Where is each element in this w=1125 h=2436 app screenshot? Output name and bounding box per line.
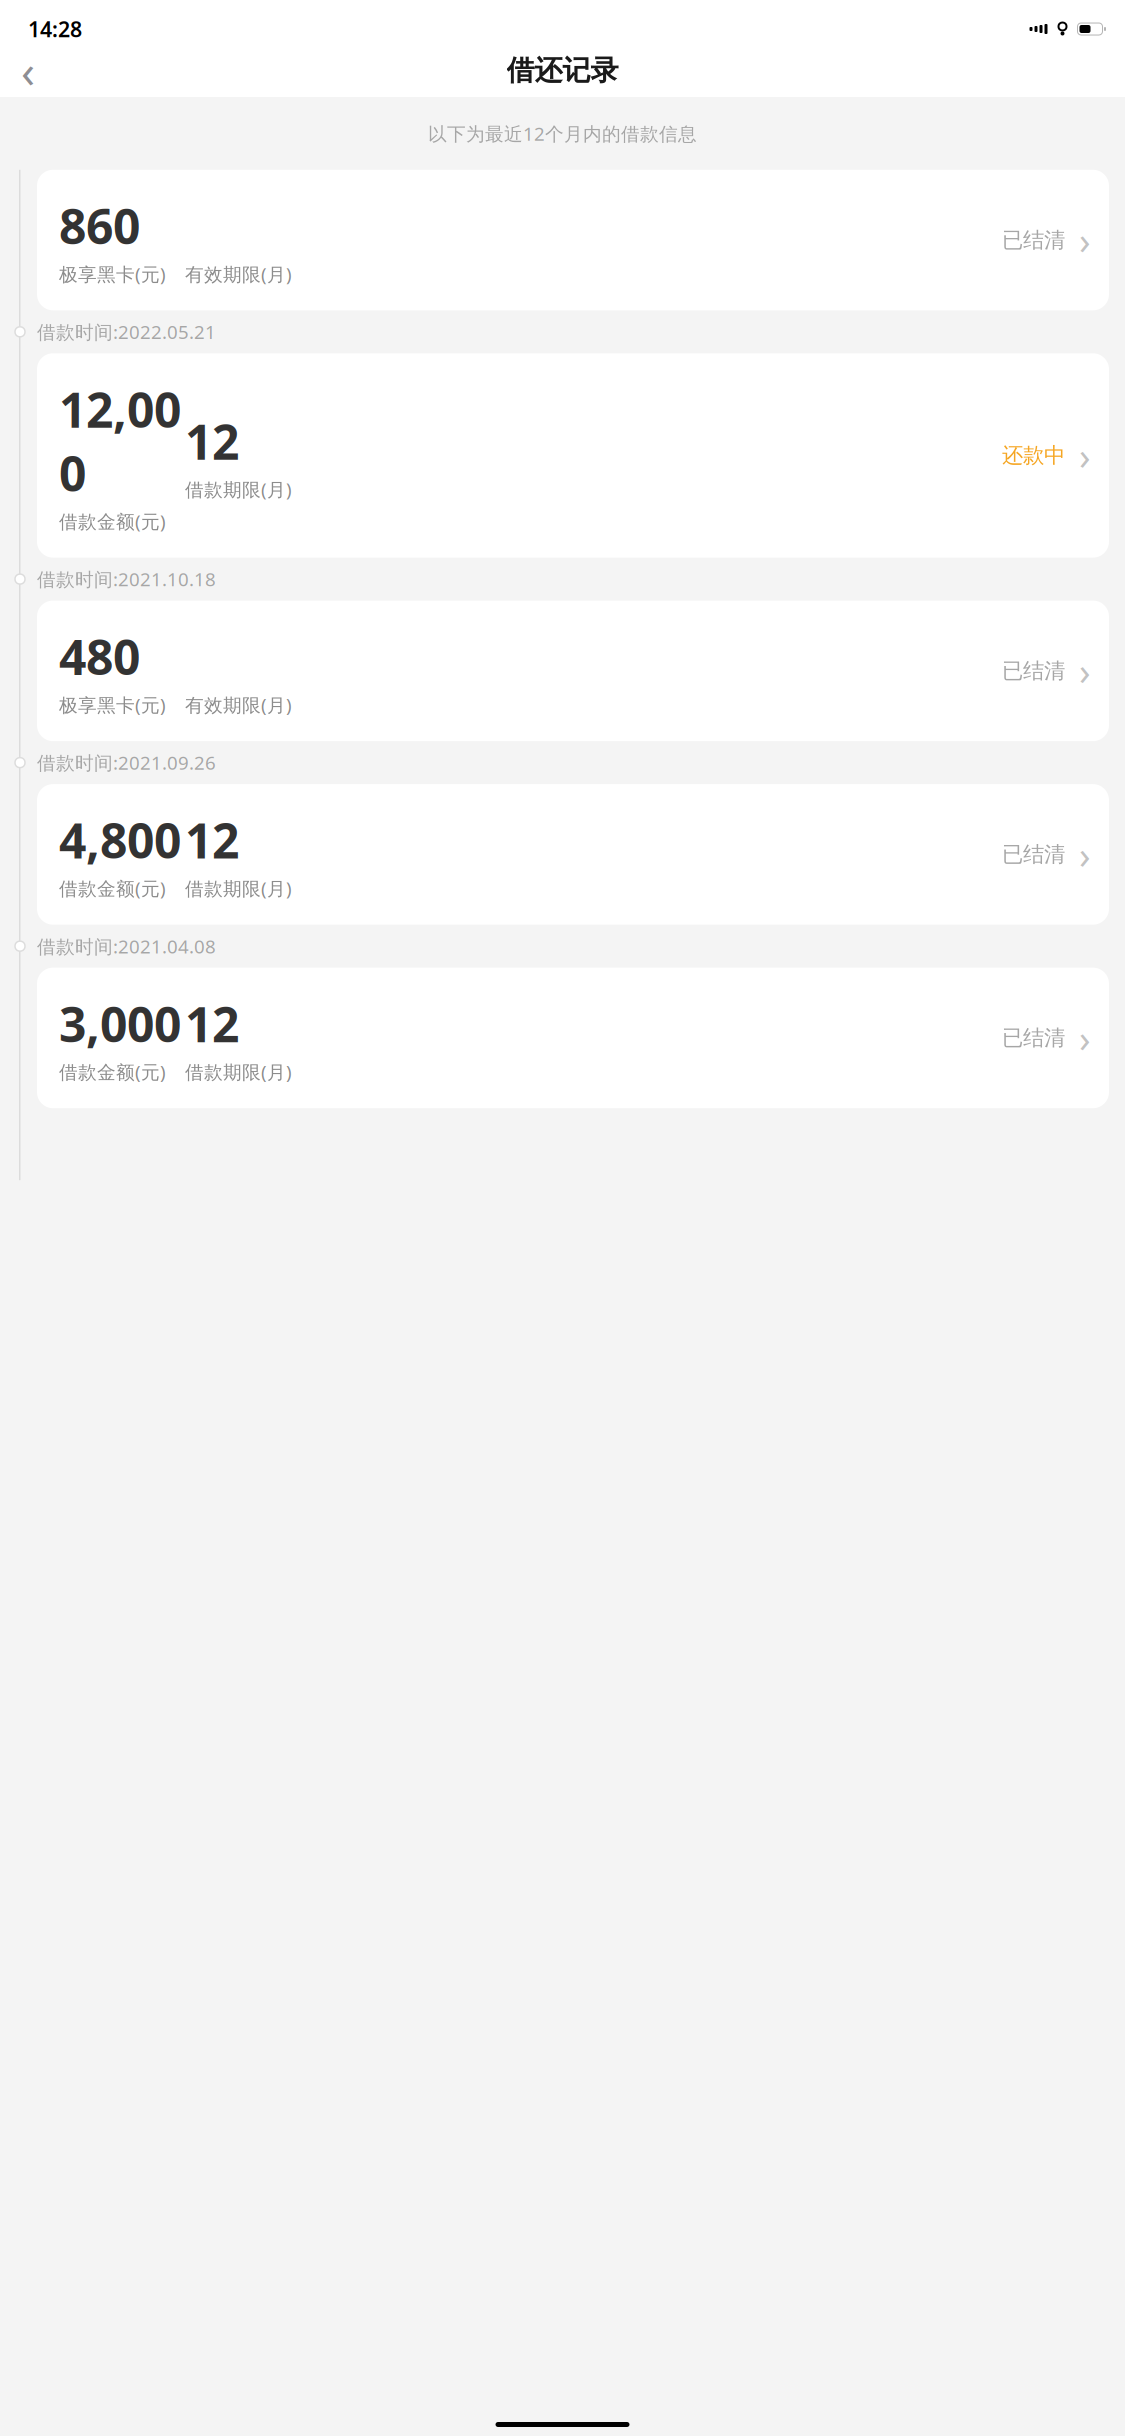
staticText: 极享黑卡(元) bbox=[59, 261, 166, 286]
staticText: 860 bbox=[59, 194, 140, 257]
staticText: 已结清 bbox=[1002, 227, 1065, 253]
button[interactable]: 12,000 bbox=[37, 353, 1109, 558]
staticText: 12 bbox=[185, 808, 239, 872]
staticText: 已结清 bbox=[1002, 841, 1065, 867]
staticText: 以下为最近12个月内的借款信息 bbox=[428, 121, 697, 146]
staticText: 借款时间:2022.05.21 bbox=[37, 319, 216, 344]
staticText: 借还记录 bbox=[506, 53, 618, 88]
staticText: 还款中 bbox=[1002, 442, 1065, 469]
button[interactable]: 返回 bbox=[5, 47, 51, 93]
staticText: 极享黑卡(元) bbox=[59, 692, 166, 717]
staticText: ‹ bbox=[21, 40, 35, 101]
staticText: 借款期限(月) bbox=[185, 1059, 292, 1084]
button[interactable]: 860 bbox=[37, 170, 1109, 310]
staticText: 12 bbox=[185, 409, 239, 473]
staticText: 借款金额(元) bbox=[59, 876, 166, 901]
staticText: 借款时间:2021.10.18 bbox=[37, 567, 216, 591]
staticText: 借款金额(元) bbox=[59, 509, 166, 534]
staticText: 已结清 bbox=[1002, 1025, 1065, 1051]
button[interactable]: 4,800 bbox=[37, 784, 1109, 925]
staticText: 3,000 bbox=[59, 992, 181, 1055]
staticText: › bbox=[1079, 215, 1091, 265]
button[interactable]: 3,000 bbox=[37, 968, 1109, 1108]
button[interactable]: 480 bbox=[37, 601, 1109, 741]
staticText: 14:28 bbox=[28, 15, 82, 43]
staticText: › bbox=[1079, 646, 1091, 696]
staticText: 借款时间:2021.09.26 bbox=[37, 750, 216, 775]
staticText: 借款时间:2021.04.08 bbox=[37, 934, 216, 959]
staticText: › bbox=[1079, 830, 1091, 879]
staticText: › bbox=[1079, 431, 1091, 480]
staticText: 12 bbox=[185, 992, 239, 1055]
staticText: 4,800 bbox=[59, 808, 181, 872]
staticText: 借款金额(元) bbox=[59, 1059, 166, 1084]
staticText: 12,000 bbox=[59, 377, 181, 505]
staticText: 有效期限(月) bbox=[185, 692, 292, 717]
staticText: 已结清 bbox=[1002, 658, 1065, 684]
staticText: 借款期限(月) bbox=[185, 477, 292, 502]
staticText: 有效期限(月) bbox=[185, 261, 292, 286]
staticText: 480 bbox=[59, 625, 140, 688]
staticText: 借款期限(月) bbox=[185, 876, 292, 901]
staticText: › bbox=[1079, 1013, 1091, 1063]
